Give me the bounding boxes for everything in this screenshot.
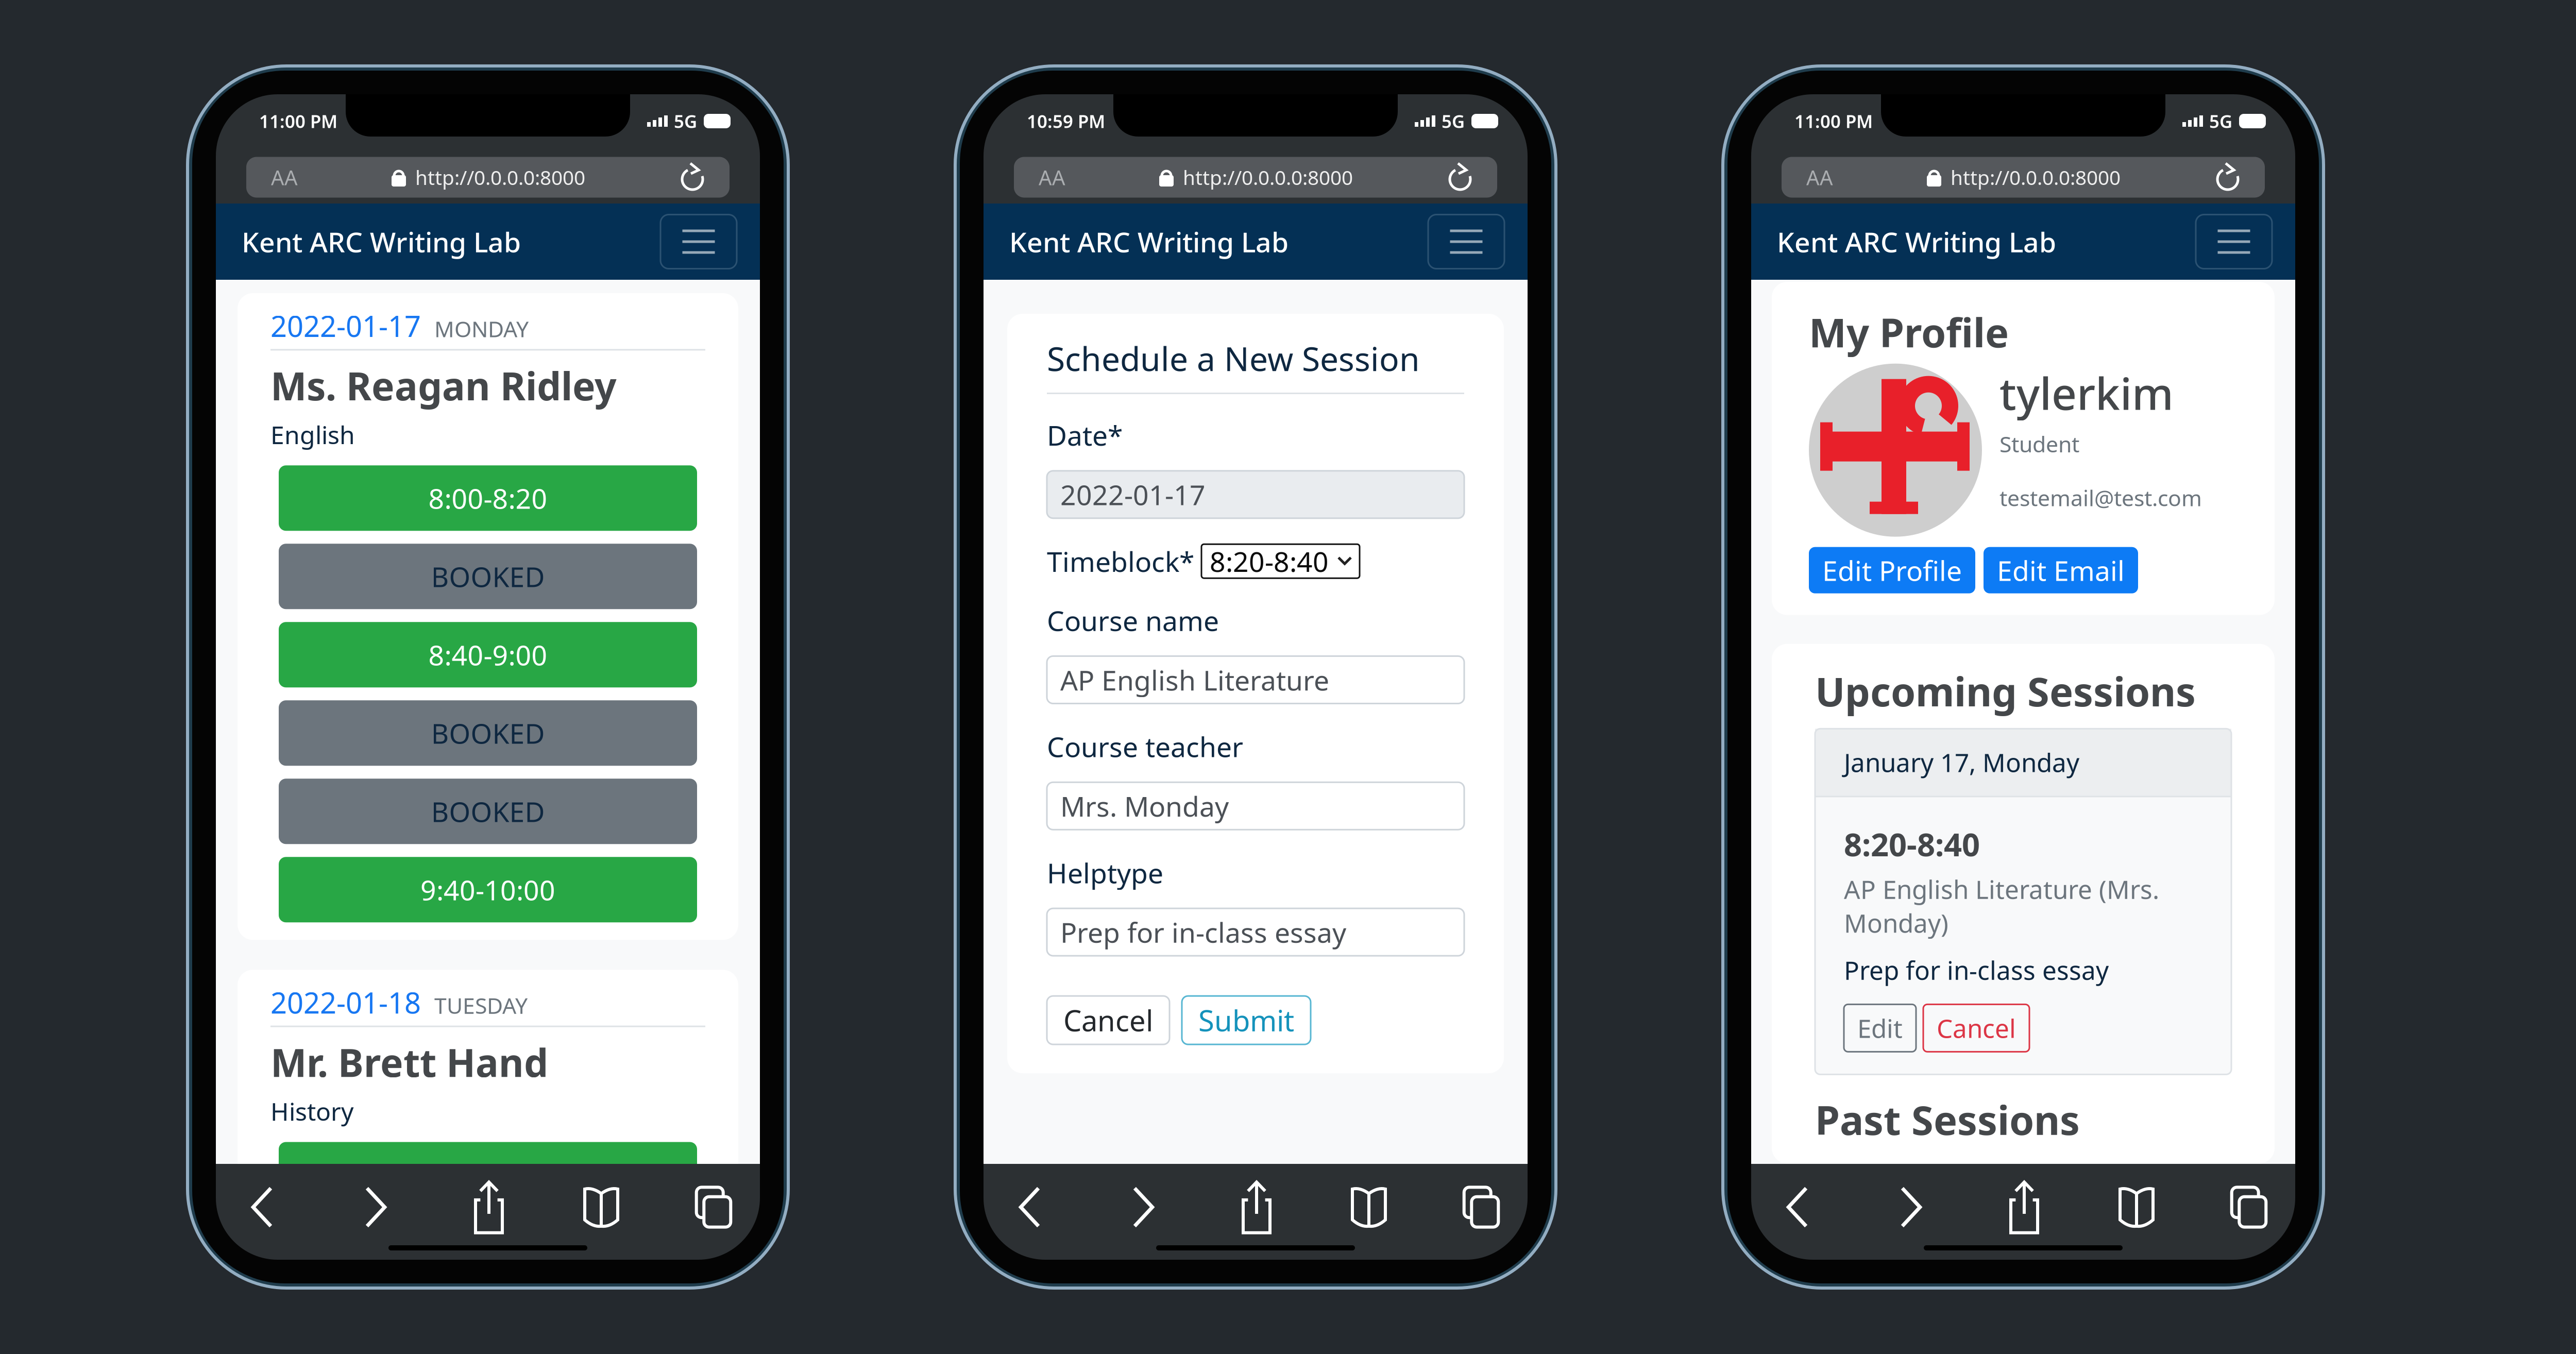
staticText: Edit Profile <box>1822 552 1962 588</box>
staticText: tylerkim <box>1999 364 2174 422</box>
staticText: Helptype <box>1047 854 1163 891</box>
staticText: My Profile <box>1809 306 2009 358</box>
staticText: 8:20-8:40 <box>1210 543 1329 579</box>
button[interactable]: Bookmarks <box>2111 1184 2162 1230</box>
button[interactable]: Cancel <box>1923 1004 2029 1052</box>
staticText: MONDAY <box>434 314 529 343</box>
staticText: AA <box>1039 164 1065 191</box>
button[interactable]: Back <box>235 1183 289 1231</box>
staticText: http://0.0.0.0:8000 <box>1183 164 1353 190</box>
button[interactable]: Share <box>462 1179 516 1235</box>
staticText: 8:00-8:20 <box>428 1156 547 1193</box>
staticText: Course teacher <box>1047 728 1243 765</box>
staticText: 5G <box>2209 109 2232 133</box>
staticText: testemail@test.com <box>1999 483 2202 512</box>
staticText: BOOKED <box>431 715 545 751</box>
staticText: Prep for in-class essay <box>1844 953 2109 987</box>
button[interactable]: Edit Profile <box>1809 547 1975 593</box>
button[interactable]: BOOKED <box>279 700 697 766</box>
button[interactable]: Back <box>1003 1183 1057 1231</box>
staticText: AP English Literature <box>1060 662 1329 698</box>
staticText: BOOKED <box>431 793 545 830</box>
button[interactable]: 8:00-8:20 <box>279 1142 697 1207</box>
staticText: Kent ARC Writing Lab <box>1009 223 1289 260</box>
staticText: 8:40-9:00 <box>428 637 547 673</box>
button[interactable]: BOOKED <box>279 544 697 609</box>
staticText: Submit <box>1198 1001 1294 1039</box>
staticText: http://0.0.0.0:8000 <box>1951 164 2121 190</box>
staticText: Edit <box>1857 1011 1903 1045</box>
staticText: English <box>270 418 355 451</box>
staticText: Mr. Brett Hand <box>270 1036 548 1088</box>
staticText: Course name <box>1047 602 1219 639</box>
staticText: http://0.0.0.0:8000 <box>415 164 585 190</box>
staticText: Date* <box>1047 417 1123 453</box>
staticText: Cancel <box>1937 1011 2016 1045</box>
button[interactable]: Edit <box>1844 1004 1916 1052</box>
staticText: Kent ARC Writing Lab <box>1777 223 2056 260</box>
button[interactable]: Share <box>1997 1179 2051 1235</box>
staticText: Schedule a New Session <box>1047 336 1420 380</box>
staticText: AA <box>1806 164 1833 191</box>
staticText: 11:00 PM <box>259 109 337 133</box>
staticText: 2022-01-17 <box>270 307 421 345</box>
staticText: Ms. Reagan Ridley <box>270 360 617 411</box>
staticText: Past Sessions <box>1815 1093 2080 1146</box>
staticText: January 17, Monday <box>1844 745 2079 779</box>
button[interactable]: Cancel <box>1047 996 1170 1044</box>
button[interactable]: Submit <box>1182 996 1311 1044</box>
button[interactable]: Tabs <box>687 1183 740 1231</box>
button[interactable]: Menu <box>660 215 737 269</box>
staticText: 5G <box>674 109 697 133</box>
button[interactable]: 8:00-8:20 <box>279 465 697 531</box>
button[interactable]: 8:40-9:00 <box>279 622 697 687</box>
button[interactable]: 9:40-10:00 <box>279 857 697 922</box>
staticText: 5G <box>1442 109 1465 133</box>
button[interactable]: Bookmarks <box>575 1184 627 1230</box>
staticText: Prep for in-class essay <box>1060 914 1346 950</box>
staticText: 9:40-10:00 <box>420 871 555 908</box>
button[interactable]: Tabs <box>1454 1183 1508 1231</box>
button[interactable]: Forward <box>1116 1183 1170 1231</box>
staticText: 8:20-8:40 <box>1844 823 1980 865</box>
staticText: Student <box>1999 429 2079 458</box>
button[interactable]: Forward <box>349 1183 402 1231</box>
button[interactable]: Edit Email <box>1984 547 2138 593</box>
staticText: History <box>270 1095 353 1128</box>
staticText: 10:59 PM <box>1027 109 1105 133</box>
staticText: 2022-01-18 <box>270 983 421 1022</box>
staticText: TUESDAY <box>434 991 528 1020</box>
staticText: 8:00-8:20 <box>428 480 547 516</box>
staticText: AP English Literature (Mrs. Monday) <box>1844 872 2159 940</box>
button[interactable]: Menu <box>2196 215 2272 269</box>
staticText: AA <box>271 164 298 191</box>
button[interactable]: BOOKED <box>279 779 697 844</box>
staticText: Timeblock* <box>1047 543 1194 579</box>
button[interactable]: Forward <box>1884 1183 1938 1231</box>
staticText: Cancel <box>1063 1001 1153 1039</box>
staticText: BOOKED <box>431 558 545 595</box>
staticText: Edit Email <box>1997 552 2125 588</box>
staticText: 11:00 PM <box>1794 109 1873 133</box>
button[interactable]: Share <box>1230 1179 1283 1235</box>
staticText: Mrs. Monday <box>1060 788 1229 824</box>
button[interactable]: Tabs <box>2222 1183 2276 1231</box>
staticText: 2022-01-17 <box>1060 476 1206 513</box>
staticText: Kent ARC Writing Lab <box>242 223 521 260</box>
button[interactable]: Menu <box>1428 215 1504 269</box>
button[interactable]: Bookmarks <box>1343 1184 1395 1230</box>
button[interactable]: Back <box>1771 1183 1824 1231</box>
staticText: Upcoming Sessions <box>1815 664 2196 717</box>
